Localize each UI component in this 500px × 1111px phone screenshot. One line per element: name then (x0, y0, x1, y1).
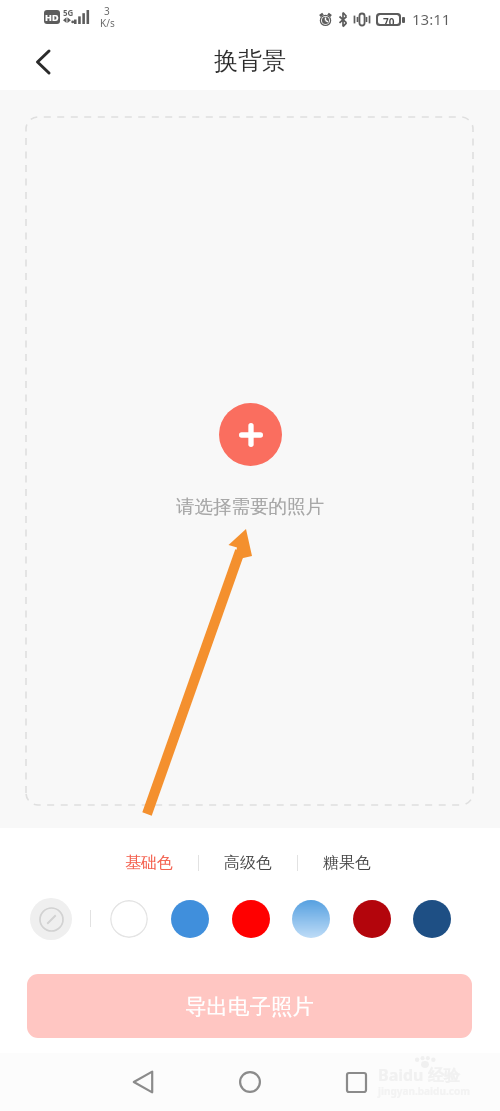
staticText: 基础色 (125, 853, 173, 873)
staticText: 5G (63, 7, 74, 18)
button[interactable]: 基础色 (121, 848, 177, 878)
button[interactable]: Colour (110, 900, 148, 938)
staticText: 3 (104, 4, 110, 18)
button[interactable]: 高级色 (220, 848, 276, 878)
button[interactable]: Add photo (219, 403, 282, 466)
button[interactable]: Colour (353, 900, 391, 938)
button[interactable]: Gradient colour (292, 900, 330, 938)
button[interactable]: 导出电子照片 (27, 974, 472, 1038)
button[interactable]: Back (123, 1062, 163, 1102)
staticText: 请选择需要的照片 (176, 495, 324, 518)
button[interactable]: Colour (413, 900, 451, 938)
button[interactable]: No colour (30, 898, 72, 940)
button[interactable]: Colour (171, 900, 209, 938)
button[interactable]: Recents (336, 1062, 376, 1102)
staticText: 70 (383, 15, 395, 24)
staticText: 糖果色 (323, 853, 371, 873)
button[interactable]: Colour (232, 900, 270, 938)
staticText: Baidu 经验 (378, 1064, 460, 1086)
button[interactable]: Back (22, 42, 62, 82)
staticText: HD (45, 11, 59, 23)
button[interactable]: 糖果色 (319, 848, 375, 878)
staticText: 高级色 (224, 853, 272, 873)
staticText: 导出电子照片 (185, 993, 314, 1020)
staticText: K/s (100, 16, 115, 30)
staticText: jingyan.baidu.com (378, 1084, 470, 1098)
staticText: 13:11 (412, 9, 451, 29)
button[interactable]: Home (230, 1062, 270, 1102)
staticText: 换背景 (214, 46, 286, 76)
